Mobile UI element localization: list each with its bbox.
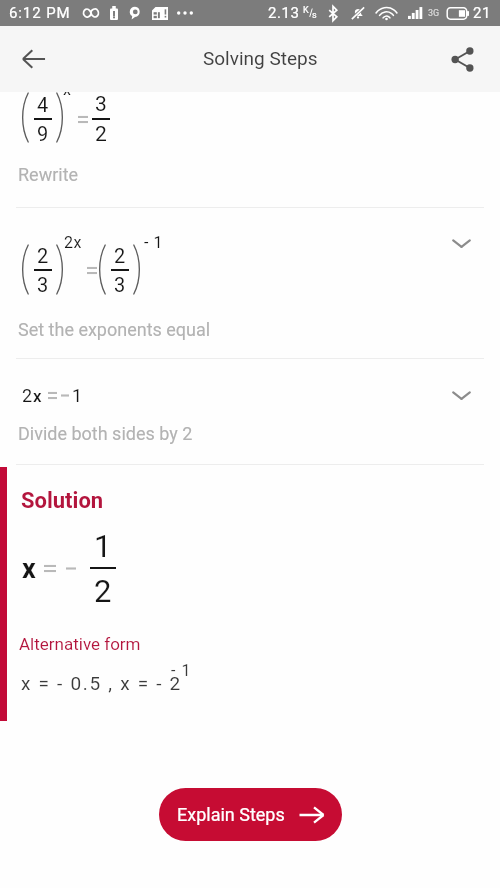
staticText: Solving Steps [203, 47, 318, 69]
staticText: s [312, 10, 317, 21]
staticText: x [22, 553, 36, 585]
staticText: 3G [428, 8, 440, 19]
staticText: 1 [72, 385, 83, 406]
staticText: 4 [37, 93, 49, 116]
staticText: x [63, 80, 72, 99]
staticText: 3 [114, 273, 126, 296]
staticText: K [303, 5, 309, 16]
button[interactable]: Expand step [439, 373, 483, 417]
staticText: 21 [473, 4, 492, 22]
button[interactable]: Expand step [439, 221, 483, 265]
button[interactable]: Explain Steps [159, 788, 342, 841]
staticText: 3 [37, 273, 49, 296]
staticText: 2 [114, 244, 126, 267]
staticText: 2 [95, 122, 107, 147]
staticText: 3 [95, 92, 107, 117]
staticText: Set the exponents equal [18, 319, 211, 340]
staticText: Divide both sides by 2 [18, 423, 193, 444]
staticText: Explain Steps [177, 804, 285, 825]
staticText: 9 [37, 122, 49, 145]
staticText: - 1 [171, 661, 192, 680]
staticText: 2 [22, 385, 33, 406]
staticText: 2.13 [268, 4, 300, 22]
staticText: 2 [94, 573, 112, 609]
staticText: Alternative form [19, 634, 141, 654]
staticText: 2 [37, 244, 49, 267]
staticText: 6:12 PM [9, 4, 71, 22]
staticText: 1 [94, 528, 112, 564]
staticText: Solution [21, 488, 104, 514]
staticText: x = - 0.5 , x = - 2 [21, 672, 182, 694]
button[interactable]: Share [438, 35, 486, 83]
staticText: 2x [64, 233, 83, 252]
staticText: x [33, 386, 42, 406]
staticText: - 1 [144, 233, 164, 252]
button[interactable]: Back [10, 35, 58, 83]
staticText: Rewrite [18, 164, 79, 185]
